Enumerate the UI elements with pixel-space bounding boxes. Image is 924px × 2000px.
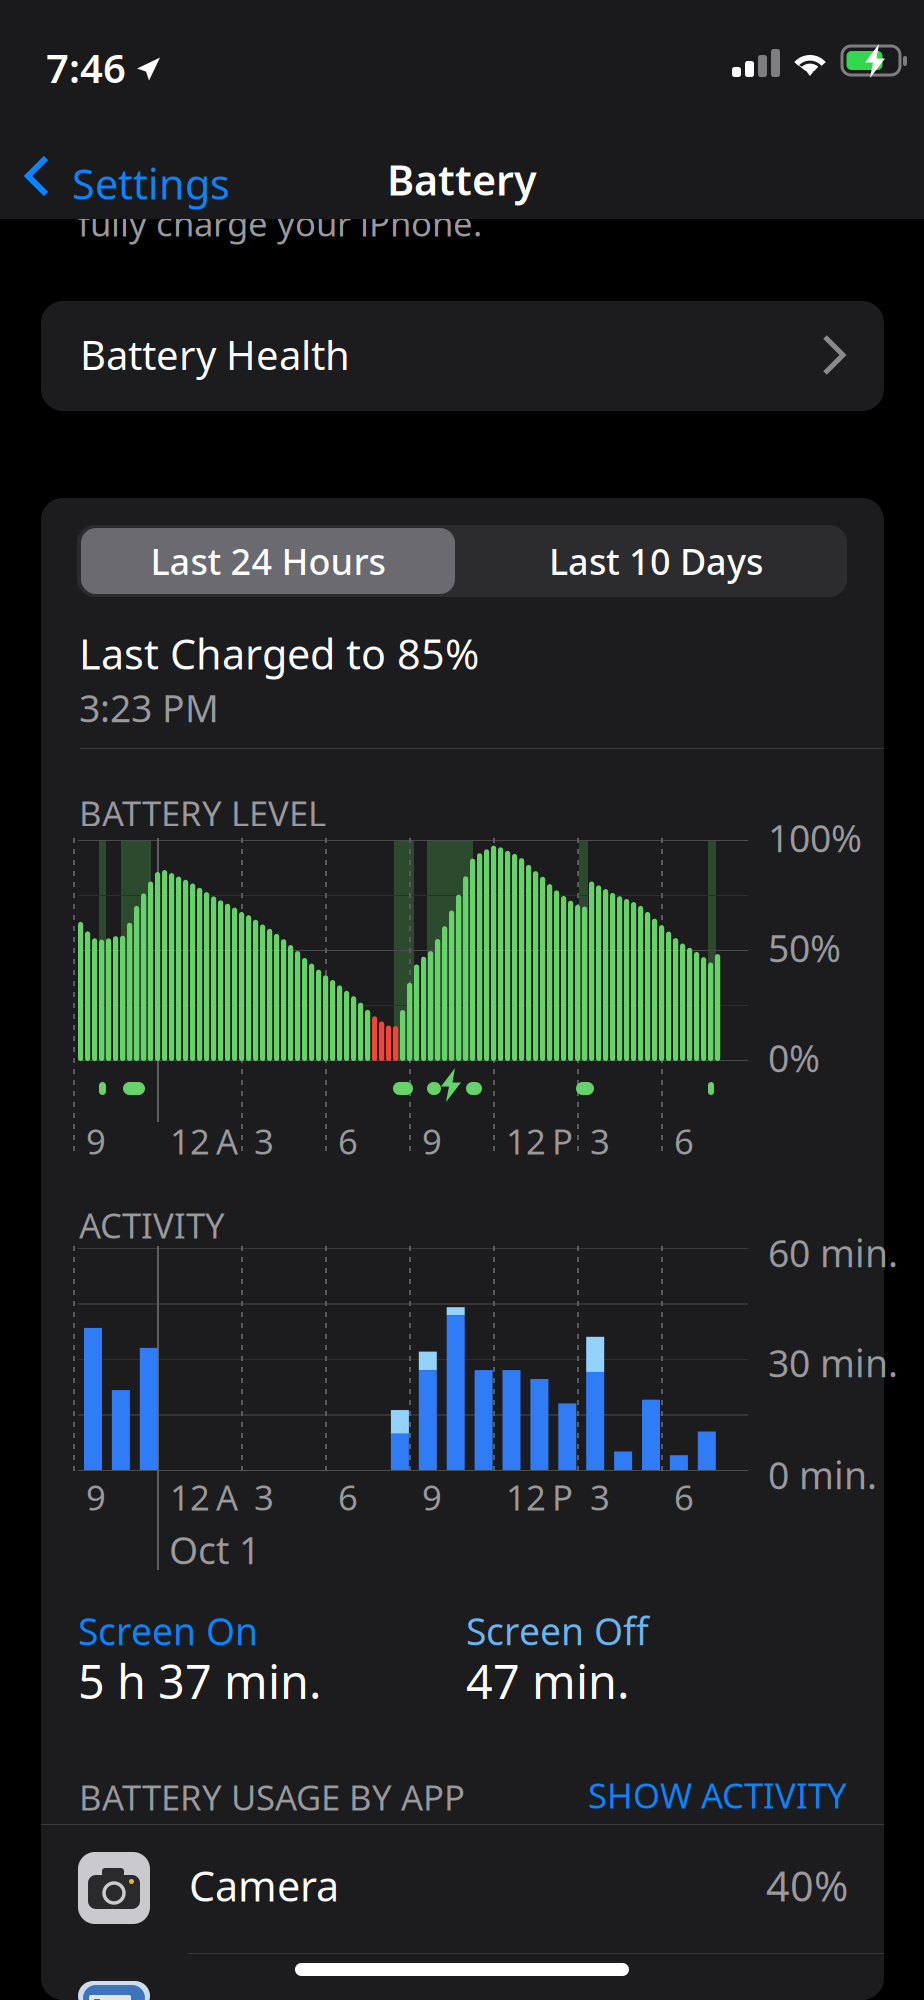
staticText: 12 P	[506, 1118, 573, 1164]
staticText: Battery Health	[80, 328, 350, 381]
button[interactable]: Settings	[16, 138, 244, 214]
staticText: SHOW ACTIVITY	[588, 1772, 847, 1818]
staticText: 40%	[766, 1858, 848, 1913]
staticText: Screen On	[78, 1606, 258, 1656]
button[interactable]: Last 10 Days	[469, 528, 843, 594]
staticText: Battery	[387, 152, 537, 207]
button[interactable]: Last 24 Hours	[81, 528, 455, 594]
staticText: 47 min.	[466, 1650, 630, 1712]
staticText: Last Charged to 85%	[79, 626, 479, 681]
staticText: 9	[86, 1474, 106, 1520]
staticText: 30 min.	[768, 1338, 898, 1388]
staticText: 3:23 PM	[79, 683, 219, 733]
staticText: 12 A	[170, 1118, 238, 1164]
staticText: 7:46	[46, 41, 126, 94]
staticText: Settings	[72, 156, 230, 211]
staticText: 6	[338, 1118, 358, 1164]
staticText: 5 h 37 min.	[78, 1650, 322, 1712]
staticText: 6	[338, 1474, 358, 1520]
staticText: Last 10 Days	[549, 537, 763, 585]
staticText: 9	[422, 1118, 442, 1164]
staticText: Screen Off	[466, 1606, 649, 1656]
button[interactable]: Battery Health	[41, 301, 884, 411]
button[interactable]: SHOW ACTIVITY	[547, 1772, 847, 1818]
button[interactable]: Camera	[41, 1825, 884, 1951]
staticText: 9	[86, 1118, 106, 1164]
staticText: BATTERY LEVEL	[79, 790, 326, 836]
staticText: 3	[590, 1118, 610, 1164]
staticText: 3	[254, 1118, 274, 1164]
staticText: Last 24 Hours	[150, 537, 385, 585]
staticText: 6	[674, 1474, 694, 1520]
staticText: fully charge your iPhone.	[78, 200, 482, 246]
staticText: BATTERY USAGE BY APP	[79, 1774, 465, 1820]
staticText: ACTIVITY	[79, 1202, 225, 1248]
staticText: 50%	[768, 923, 841, 973]
staticText: 0%	[768, 1033, 820, 1083]
staticText: 0 min.	[768, 1450, 877, 1500]
staticText: 9	[422, 1474, 442, 1520]
staticText: 60 min.	[768, 1228, 898, 1278]
staticText: Camera	[189, 1858, 339, 1913]
staticText: 3	[590, 1474, 610, 1520]
staticText: 12 P	[506, 1474, 573, 1520]
staticText: 6	[674, 1118, 694, 1164]
staticText: Oct 1	[169, 1525, 260, 1575]
staticText: 3	[254, 1474, 274, 1520]
staticText: 12 A	[170, 1474, 238, 1520]
staticText: 100%	[768, 813, 862, 863]
